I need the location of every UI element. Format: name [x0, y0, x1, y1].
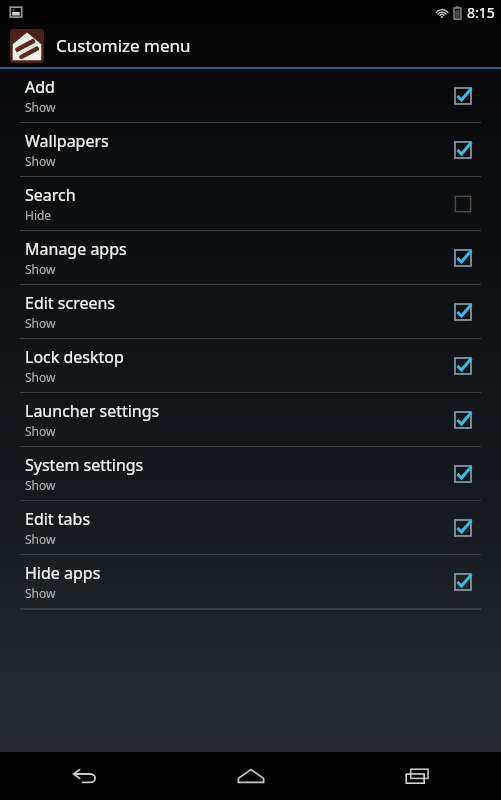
button[interactable]: Search — [0, 177, 501, 230]
other: Checked — [453, 86, 473, 106]
button[interactable]: Add — [0, 69, 501, 122]
staticText: Show — [25, 585, 56, 601]
button[interactable]: Launcher settings — [0, 393, 501, 446]
staticText: Hide apps — [25, 562, 101, 584]
staticText: Wallpapers — [25, 130, 109, 152]
other: Unchecked — [453, 194, 473, 214]
staticText: Launcher settings — [25, 400, 160, 422]
button[interactable]: Recents — [334, 752, 501, 800]
staticText: Show — [25, 369, 56, 385]
staticText: Lock desktop — [25, 346, 124, 368]
staticText: Show — [25, 423, 56, 439]
staticText: Show — [25, 153, 56, 169]
staticText: Show — [25, 99, 56, 115]
button[interactable]: Edit tabs — [0, 501, 501, 554]
other: Checked — [453, 248, 473, 268]
other: Checked — [453, 302, 473, 322]
other: Checked — [453, 572, 473, 592]
button[interactable]: Hide apps — [0, 555, 501, 608]
staticText: Edit screens — [25, 292, 116, 314]
staticText: Manage apps — [25, 238, 127, 260]
staticText: Search — [25, 184, 76, 206]
staticText: 8:15 — [467, 3, 495, 22]
staticText: System settings — [25, 454, 144, 476]
other: Checked — [453, 140, 473, 160]
staticText: Show — [25, 261, 56, 277]
staticText: Hide — [25, 207, 52, 223]
button[interactable]: Manage apps — [0, 231, 501, 284]
staticText: Customize menu — [56, 34, 191, 57]
other: Checked — [453, 410, 473, 430]
button[interactable]: Lock desktop — [0, 339, 501, 392]
button[interactable]: Wallpapers — [0, 123, 501, 176]
other: Checked — [453, 464, 473, 484]
button[interactable]: Customize menu — [0, 24, 501, 67]
button[interactable]: Back — [0, 752, 167, 800]
staticText: Show — [25, 477, 56, 493]
other: Checked — [453, 356, 473, 376]
staticText: Add — [25, 76, 55, 98]
staticText: Edit tabs — [25, 508, 91, 530]
other: Checked — [453, 518, 473, 538]
button[interactable]: Edit screens — [0, 285, 501, 338]
button[interactable]: System settings — [0, 447, 501, 500]
button[interactable]: Home — [167, 752, 334, 800]
staticText: Show — [25, 531, 56, 547]
staticText: Show — [25, 315, 56, 331]
